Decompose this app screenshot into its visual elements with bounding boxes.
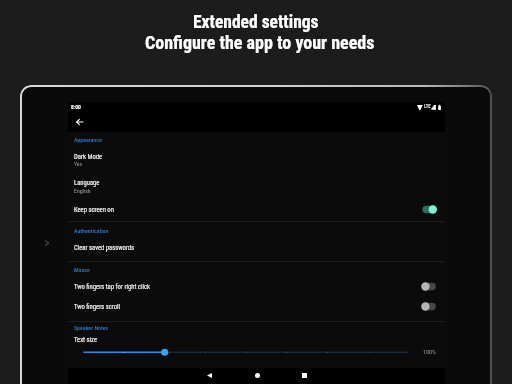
button[interactable]: Home [250, 368, 264, 382]
button[interactable] [68, 200, 445, 219]
staticText: Mouse [74, 267, 90, 274]
button[interactable]: Recent apps [297, 368, 311, 382]
button[interactable] [68, 177, 445, 199]
button[interactable]: Back [202, 368, 216, 382]
staticText: Speaker Notes [74, 325, 109, 332]
staticText: Yes [74, 161, 83, 168]
staticText: Dark Mode [74, 153, 103, 161]
button[interactable]: Two fingers tap for right click [421, 280, 438, 293]
staticText: Clear saved passwords [74, 244, 135, 252]
staticText: Language [74, 179, 100, 187]
staticText: Configure the app to your needs [145, 32, 375, 53]
button[interactable] [68, 150, 445, 172]
staticText: Appearance [74, 137, 102, 144]
staticText: Two fingers tap for right click [74, 283, 150, 291]
staticText: Extended settings [193, 12, 319, 33]
staticText: 8:00 [71, 104, 81, 111]
button[interactable]: Text size slider [79, 344, 413, 360]
staticText: 100% [423, 348, 436, 355]
button[interactable] [68, 297, 445, 316]
button[interactable]: Navigate back [71, 114, 87, 130]
button[interactable] [68, 277, 445, 296]
button[interactable]: Keep screen on [421, 203, 438, 216]
staticText: Authentication [74, 228, 109, 235]
staticText: Keep screen on [74, 206, 114, 214]
staticText: Text size [74, 336, 98, 344]
staticText: LTE [424, 104, 431, 109]
button[interactable]: Two fingers scroll [421, 300, 438, 313]
button[interactable] [68, 238, 445, 257]
staticText: Two fingers scroll [74, 303, 120, 311]
staticText: English [74, 188, 91, 195]
button[interactable]: Expand navigation drawer [39, 235, 55, 251]
